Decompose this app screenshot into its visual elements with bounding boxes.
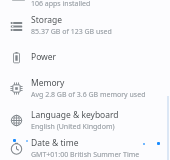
staticText: English (United Kingdom) xyxy=(31,122,115,132)
button[interactable]: 106 apps installed xyxy=(0,0,170,10)
staticText: GMT+01:00 British Summer Time xyxy=(31,150,140,160)
staticText: Date & time xyxy=(31,137,79,149)
staticText: Storage xyxy=(31,14,63,26)
button[interactable]: Storage xyxy=(0,10,170,41)
button[interactable]: Memory xyxy=(0,72,170,104)
button[interactable]: Date and time xyxy=(0,136,170,160)
button[interactable]: Power xyxy=(0,41,170,72)
other: Language and keyboard xyxy=(9,113,23,127)
other: Date and time xyxy=(9,141,23,155)
button[interactable]: Language and keyboard xyxy=(0,104,170,136)
other: Power xyxy=(9,50,23,64)
staticText: 106 apps installed xyxy=(31,0,91,9)
staticText: Language & keyboard xyxy=(31,109,119,121)
staticText: Avg 2.8 GB of 3.6 GB memory used xyxy=(31,90,146,100)
staticText: Power xyxy=(31,51,57,63)
other: Storage xyxy=(9,19,23,33)
staticText: 85.37 GB of 123 GB used xyxy=(31,27,112,37)
staticText: Memory xyxy=(31,77,65,89)
other: Memory xyxy=(9,81,23,95)
